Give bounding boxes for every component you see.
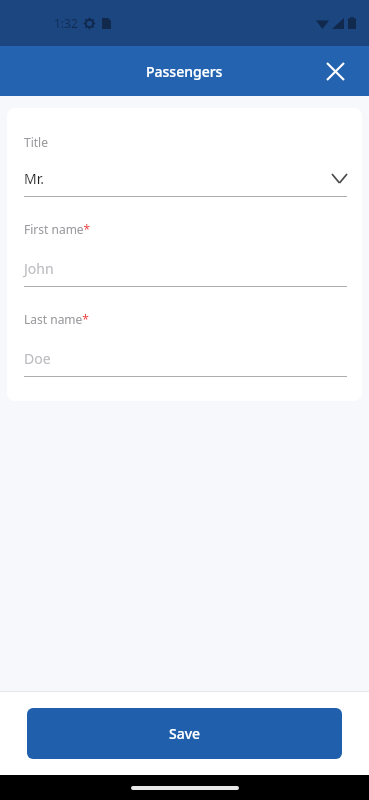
staticText: Doe bbox=[24, 349, 51, 368]
button[interactable]: Save bbox=[27, 708, 342, 759]
staticText: Title bbox=[24, 134, 48, 150]
button[interactable]: Close bbox=[315, 51, 355, 91]
button[interactable]: John bbox=[24, 259, 347, 278]
button[interactable]: Doe bbox=[24, 349, 347, 368]
staticText: John bbox=[24, 259, 54, 278]
staticText: Save bbox=[169, 724, 201, 743]
button[interactable]: Mr. bbox=[24, 169, 347, 188]
staticText: Mr. bbox=[24, 169, 332, 188]
staticText: 1:32 bbox=[54, 15, 78, 31]
staticText: Last name* bbox=[24, 311, 89, 327]
staticText: Passengers bbox=[146, 62, 223, 81]
staticText: First name* bbox=[24, 221, 91, 237]
